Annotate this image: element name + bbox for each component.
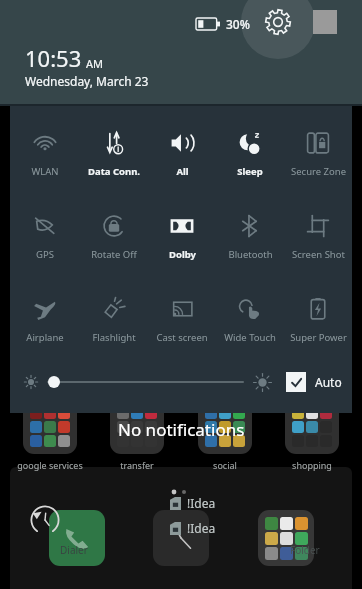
button[interactable]: social xyxy=(188,400,262,471)
button[interactable] xyxy=(258,510,314,566)
button[interactable]: WLAN xyxy=(10,114,79,197)
button[interactable]: !Idea xyxy=(170,520,216,536)
button[interactable]: Bluetooth xyxy=(216,197,284,280)
button[interactable]: Settings xyxy=(264,8,292,36)
button[interactable]: Screen Shot xyxy=(284,197,352,280)
button[interactable]: Clock xyxy=(153,510,209,566)
button[interactable]: All xyxy=(148,114,216,197)
button[interactable]: Super Power xyxy=(284,280,352,363)
staticText: AM xyxy=(86,56,104,71)
staticText: 30% xyxy=(226,16,250,32)
button[interactable]: GPS xyxy=(10,197,79,280)
staticText: Folder xyxy=(290,543,320,557)
staticText: GPS xyxy=(36,248,54,261)
button[interactable]: Phone xyxy=(49,510,105,566)
button[interactable]: Refresh xyxy=(28,503,62,537)
staticText: !Idea xyxy=(187,520,216,536)
staticText: Sleep xyxy=(237,165,263,178)
button[interactable]: transfer xyxy=(100,400,174,471)
staticText: google services xyxy=(17,459,83,471)
staticText: Wednesday, March 23 xyxy=(25,73,149,89)
staticText: Secure Zone xyxy=(291,165,346,178)
button[interactable] xyxy=(48,369,243,395)
staticText: Dolby xyxy=(169,248,196,261)
staticText: shopping xyxy=(292,459,332,471)
button[interactable]: Secure Zone xyxy=(284,114,352,197)
button[interactable]: shopping xyxy=(275,400,349,471)
staticText: No notifications xyxy=(118,418,245,441)
staticText: WLAN xyxy=(31,165,59,178)
staticText: Cast screen xyxy=(156,331,208,344)
staticText: Rotate Off xyxy=(91,248,137,261)
staticText: Wide Touch xyxy=(224,331,276,344)
button[interactable]: Flashlight xyxy=(79,280,148,363)
staticText: Bluetooth xyxy=(228,248,273,261)
staticText: All xyxy=(176,165,189,178)
staticText: Auto xyxy=(315,374,342,390)
staticText: Screen Shot xyxy=(292,248,345,261)
staticText: transfer xyxy=(120,459,154,471)
button[interactable]: !Idea xyxy=(170,495,216,511)
staticText: Super Power xyxy=(290,331,347,344)
staticText: Airplane xyxy=(26,331,64,344)
button[interactable]: Sleep xyxy=(216,114,284,197)
button[interactable]: Auto xyxy=(286,372,342,392)
staticText: social xyxy=(213,459,237,471)
button[interactable]: google services xyxy=(13,400,87,471)
staticText: !Idea xyxy=(187,495,216,511)
button[interactable]: Cast screen xyxy=(148,280,216,363)
staticText: Flashlight xyxy=(92,331,136,344)
button[interactable]: Data Conn. xyxy=(79,114,148,197)
button[interactable]: Wide Touch xyxy=(216,280,284,363)
button[interactable]: Airplane xyxy=(10,280,79,363)
staticText: 10:53 xyxy=(25,43,82,73)
staticText: Dialer xyxy=(60,543,88,557)
button[interactable]: Dolby xyxy=(148,197,216,280)
button[interactable]: Rotate Off xyxy=(79,197,148,280)
staticText: Data Conn. xyxy=(88,165,140,178)
